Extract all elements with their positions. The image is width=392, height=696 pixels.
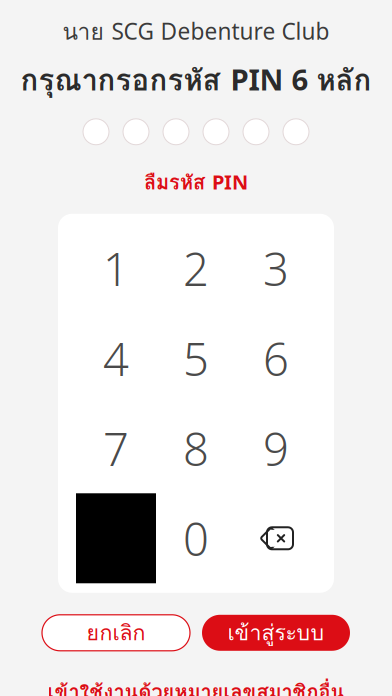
- button[interactable]: เข้าใช้งานด้วยหมายเลขสมาชิกอื่น: [37, 673, 354, 696]
- button[interactable]: 5: [156, 313, 236, 403]
- staticText: เข้าสู่ระบบ: [227, 616, 324, 649]
- button[interactable]: ยกเลิก: [42, 615, 190, 651]
- staticText: ลืมรหัส PIN: [144, 167, 248, 198]
- staticText: 0: [183, 508, 209, 568]
- button[interactable]: 0: [156, 493, 236, 583]
- staticText: 9: [263, 418, 289, 478]
- button[interactable]: เข้าสู่ระบบ: [202, 615, 350, 651]
- staticText: ยกเลิก: [86, 616, 145, 649]
- button[interactable]: 4: [76, 313, 156, 403]
- staticText: 5: [183, 328, 209, 388]
- staticText: กรุณากรอกรหัส PIN 6 หลัก: [20, 57, 371, 103]
- staticText: 2: [183, 238, 209, 298]
- staticText: เข้าใช้งานด้วยหมายเลขสมาชิกอื่น: [47, 677, 344, 696]
- button[interactable]: 9: [236, 403, 316, 493]
- button[interactable]: 1: [76, 223, 156, 313]
- staticText: 1: [103, 238, 129, 298]
- button[interactable]: ลืมรหัส PIN: [134, 163, 258, 202]
- staticText: 4: [103, 328, 129, 388]
- staticText: นาย SCG Debenture Club: [62, 14, 329, 49]
- button[interactable]: 3: [236, 223, 316, 313]
- staticText: 6: [263, 328, 289, 388]
- button[interactable]: 2: [156, 223, 236, 313]
- button[interactable]: 6: [236, 313, 316, 403]
- staticText: 7: [103, 418, 129, 478]
- button[interactable]: Delete: [236, 493, 316, 583]
- staticText: 8: [183, 418, 209, 478]
- button[interactable]: 8: [156, 403, 236, 493]
- button[interactable]: 7: [76, 403, 156, 493]
- staticText: 3: [263, 238, 289, 298]
